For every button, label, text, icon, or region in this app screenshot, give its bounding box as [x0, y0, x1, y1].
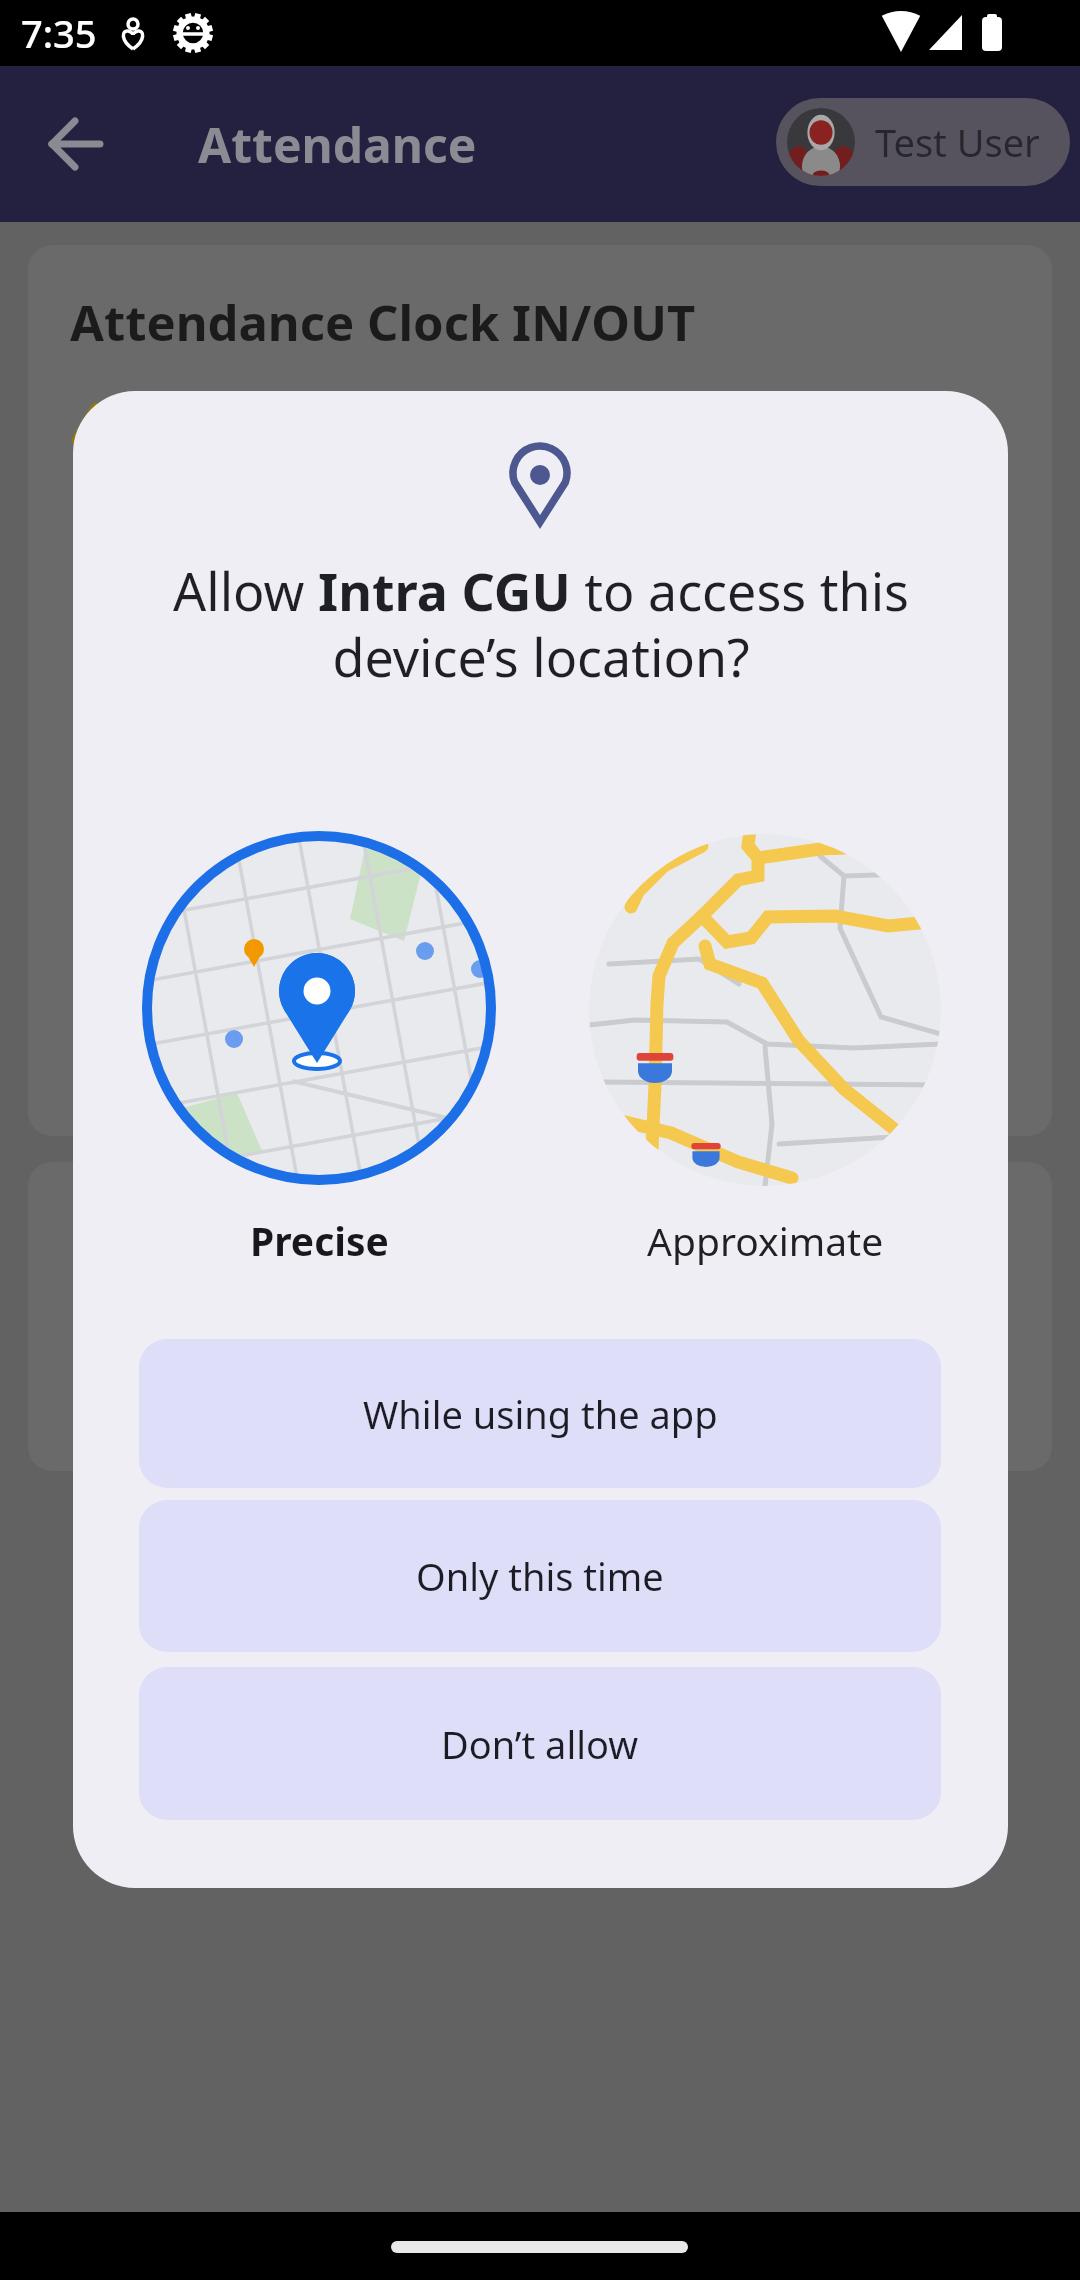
staticText: Approximate — [647, 1214, 884, 1267]
staticText: While using the app — [363, 1388, 718, 1440]
staticText: Only this time — [416, 1550, 664, 1602]
button[interactable] — [48, 116, 104, 172]
button[interactable]: Don’t allow — [139, 1667, 941, 1820]
staticText: 7:35 — [21, 7, 97, 59]
staticText: Allow Intra CGU to access this device’s … — [173, 555, 909, 692]
button[interactable]: While using the app — [139, 1339, 941, 1488]
button[interactable]: Only this time — [139, 1500, 941, 1652]
button[interactable]: Test User — [776, 98, 1070, 186]
staticText: Test User — [875, 116, 1040, 168]
staticText: Don’t allow — [441, 1718, 639, 1770]
staticText: Attendance — [198, 112, 477, 177]
staticText: Precise — [250, 1214, 389, 1267]
staticText: Attendance Clock IN/OUT — [70, 289, 696, 356]
